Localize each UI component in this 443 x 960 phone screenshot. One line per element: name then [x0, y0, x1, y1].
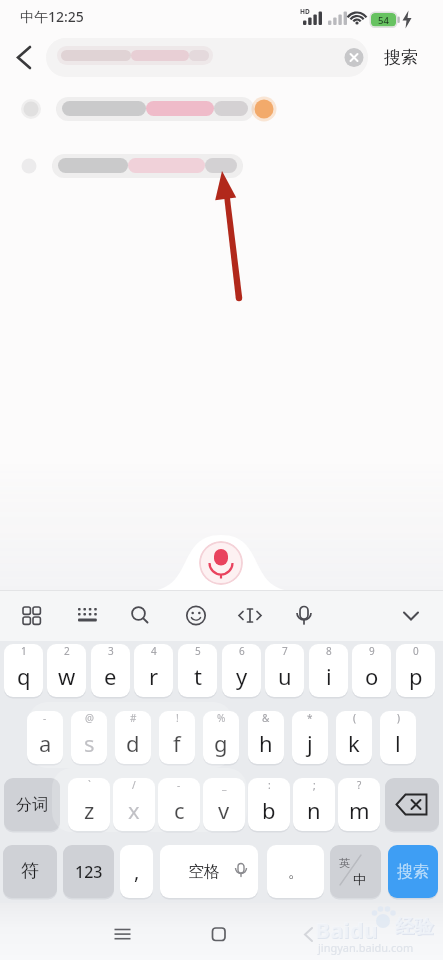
- button[interactable]: ,: [120, 845, 153, 898]
- button[interactable]: 6: [222, 644, 261, 697]
- button[interactable]: ): [380, 711, 416, 764]
- button[interactable]: [0, 0, 50, 90]
- staticText: i: [326, 661, 332, 691]
- staticText: 分词: [16, 795, 48, 815]
- staticText: ?: [357, 778, 362, 792]
- button[interactable]: [46, 38, 368, 77]
- staticText: jingyan.baidu.com: [318, 940, 414, 955]
- staticText: 中: [353, 871, 366, 887]
- button[interactable]: `: [68, 778, 110, 831]
- button[interactable]: 9: [352, 644, 391, 697]
- button[interactable]: 。: [267, 845, 324, 898]
- staticText: *: [307, 711, 313, 725]
- button[interactable]: 5: [178, 644, 217, 697]
- button[interactable]: /: [113, 778, 155, 831]
- staticText: 中午12:25: [20, 7, 84, 26]
- staticText: 英: [339, 856, 350, 870]
- staticText: v: [218, 795, 230, 825]
- button[interactable]: 4: [134, 644, 173, 697]
- staticText: r: [149, 661, 159, 691]
- staticText: a: [39, 728, 52, 758]
- button[interactable]: [393, 596, 429, 636]
- staticText: 0: [413, 644, 419, 658]
- staticText: p: [409, 661, 423, 691]
- button[interactable]: (: [336, 711, 372, 764]
- button[interactable]: [104, 915, 144, 955]
- staticText: 123: [75, 861, 103, 883]
- button[interactable]: *: [292, 711, 328, 764]
- staticText: w: [58, 661, 76, 691]
- staticText: Baidu: [315, 914, 378, 944]
- button[interactable]: [0, 88, 443, 132]
- button[interactable]: ?: [338, 778, 380, 831]
- staticText: h: [259, 728, 273, 758]
- button[interactable]: [286, 596, 322, 636]
- staticText: s: [84, 728, 95, 758]
- button[interactable]: %: [203, 711, 239, 764]
- button[interactable]: -: [27, 711, 63, 764]
- button[interactable]: _: [203, 778, 245, 831]
- button[interactable]: !: [159, 711, 195, 764]
- staticText: HD: [300, 7, 310, 16]
- staticText: n: [307, 795, 321, 825]
- button[interactable]: :: [248, 778, 290, 831]
- staticText: 4: [151, 644, 157, 658]
- staticText: 54: [378, 14, 389, 27]
- staticText: _: [222, 778, 227, 792]
- button[interactable]: 2: [47, 644, 86, 697]
- staticText: q: [17, 661, 31, 691]
- staticText: (: [353, 711, 356, 725]
- button[interactable]: 搜索: [388, 845, 438, 898]
- staticText: l: [395, 728, 401, 758]
- staticText: f: [173, 728, 181, 758]
- button[interactable]: 空格: [160, 845, 258, 898]
- staticText: x: [128, 795, 140, 825]
- staticText: ): [397, 711, 400, 725]
- button[interactable]: 英: [330, 845, 381, 898]
- staticText: /: [132, 778, 136, 792]
- staticText: 1: [21, 644, 27, 658]
- staticText: u: [278, 661, 292, 691]
- button[interactable]: 7: [265, 644, 304, 697]
- button[interactable]: ;: [293, 778, 335, 831]
- button[interactable]: [385, 778, 439, 831]
- button[interactable]: @: [71, 711, 107, 764]
- button[interactable]: [69, 596, 105, 636]
- button[interactable]: [0, 145, 443, 189]
- button[interactable]: &: [248, 711, 284, 764]
- button[interactable]: 符: [3, 845, 57, 898]
- staticText: 符: [21, 860, 39, 883]
- button[interactable]: #: [115, 711, 151, 764]
- button[interactable]: [294, 915, 334, 955]
- button[interactable]: 123: [63, 845, 114, 898]
- staticText: :: [268, 778, 271, 792]
- button[interactable]: 3: [91, 644, 130, 697]
- staticText: ;: [313, 778, 316, 792]
- staticText: 搜索: [384, 47, 418, 68]
- staticText: 2: [64, 644, 70, 658]
- staticText: 7: [282, 644, 288, 658]
- staticText: Baidu: [316, 915, 379, 945]
- button[interactable]: [13, 596, 49, 636]
- button[interactable]: 0: [396, 644, 435, 697]
- staticText: #: [130, 711, 137, 725]
- button[interactable]: [121, 596, 157, 636]
- staticText: 8: [326, 644, 332, 658]
- button[interactable]: [178, 596, 214, 636]
- button[interactable]: 搜索: [370, 40, 432, 74]
- staticText: 。: [288, 862, 304, 882]
- staticText: o: [365, 661, 379, 691]
- button[interactable]: [199, 541, 243, 585]
- staticText: b: [262, 795, 276, 825]
- button[interactable]: -: [158, 778, 200, 831]
- staticText: 3: [108, 644, 114, 658]
- button[interactable]: 1: [4, 644, 43, 697]
- staticText: m: [349, 795, 370, 825]
- staticText: y: [236, 661, 248, 691]
- button[interactable]: [232, 596, 268, 636]
- button[interactable]: 8: [309, 644, 348, 697]
- staticText: `: [88, 778, 91, 792]
- button[interactable]: [199, 915, 239, 955]
- button[interactable]: 分词: [4, 778, 60, 831]
- staticText: 经验: [396, 916, 434, 940]
